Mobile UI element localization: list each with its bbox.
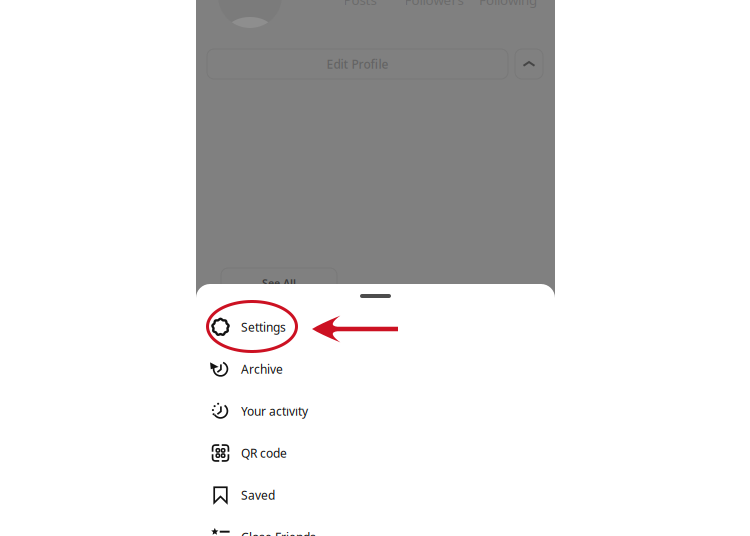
- staticText: Archive: [241, 361, 283, 377]
- staticText: Settings: [241, 319, 286, 335]
- staticText: Posts: [343, 0, 376, 9]
- button[interactable]: Your activity: [196, 390, 555, 432]
- staticText: Saved: [241, 487, 275, 503]
- staticText: Your activity: [241, 403, 308, 419]
- button[interactable]: Followers: [397, 0, 471, 9]
- staticText: See All: [262, 276, 296, 290]
- button[interactable]: Following: [471, 0, 545, 9]
- button[interactable]: Saved: [196, 474, 555, 516]
- button[interactable]: QR code: [196, 432, 555, 474]
- staticText: Followers: [404, 0, 463, 9]
- button[interactable]: Show more options: [515, 49, 543, 79]
- button[interactable]: See All: [221, 268, 337, 298]
- button[interactable]: Close Friends: [196, 516, 555, 536]
- staticText: Following: [479, 0, 537, 9]
- button[interactable]: Archive: [196, 348, 555, 390]
- staticText: QR code: [241, 445, 287, 461]
- button[interactable]: Settings: [196, 306, 555, 348]
- button[interactable]: Posts: [323, 0, 397, 9]
- staticText: Edit Profile: [326, 56, 388, 72]
- button[interactable]: Edit Profile: [207, 49, 508, 79]
- staticText: Close Friends: [241, 529, 316, 536]
